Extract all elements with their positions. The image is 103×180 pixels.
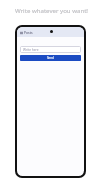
staticText: Posts	[24, 30, 33, 34]
button[interactable]: Send	[20, 55, 81, 61]
button[interactable]: Write here	[20, 46, 81, 53]
staticText: Write here	[23, 48, 39, 52]
button[interactable]: Menu	[20, 30, 23, 35]
staticText: Send	[47, 56, 54, 60]
staticText: Write whatever you want!	[0, 6, 103, 14]
